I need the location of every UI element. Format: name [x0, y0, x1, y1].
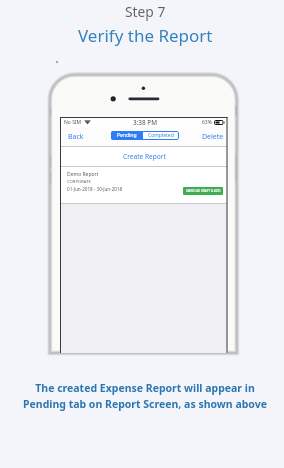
staticText: Delete [202, 132, 224, 142]
staticText: 3:38 PM [133, 118, 158, 127]
staticText: Demo Report [67, 171, 99, 178]
button[interactable]: Pending [111, 131, 143, 140]
staticText: Back [68, 132, 84, 142]
button[interactable]: Demo Report [61, 167, 227, 203]
staticText: Step 7 [125, 2, 166, 21]
staticText: Completed [148, 132, 174, 139]
staticText: Pending tab on Report Screen, as shown a… [23, 397, 267, 411]
button[interactable]: Delete [201, 130, 225, 144]
button[interactable]: Create Report [61, 147, 227, 166]
staticText: SAVED AS DRAFT & ADD [186, 189, 221, 193]
staticText: Verify the Report [78, 24, 213, 47]
staticText: The created Expense Report will appear i… [35, 381, 255, 395]
staticText: Pending [117, 132, 137, 139]
staticText: Create Report [123, 152, 166, 161]
staticText: CORPORATE [67, 179, 91, 185]
button[interactable]: Completed [143, 131, 179, 140]
staticText: 01-Jun-2018 - 30-Jun-2018 [67, 186, 123, 192]
staticText: No SIM [64, 119, 82, 126]
staticText: 63% [202, 119, 212, 126]
button[interactable]: Back [67, 130, 85, 144]
